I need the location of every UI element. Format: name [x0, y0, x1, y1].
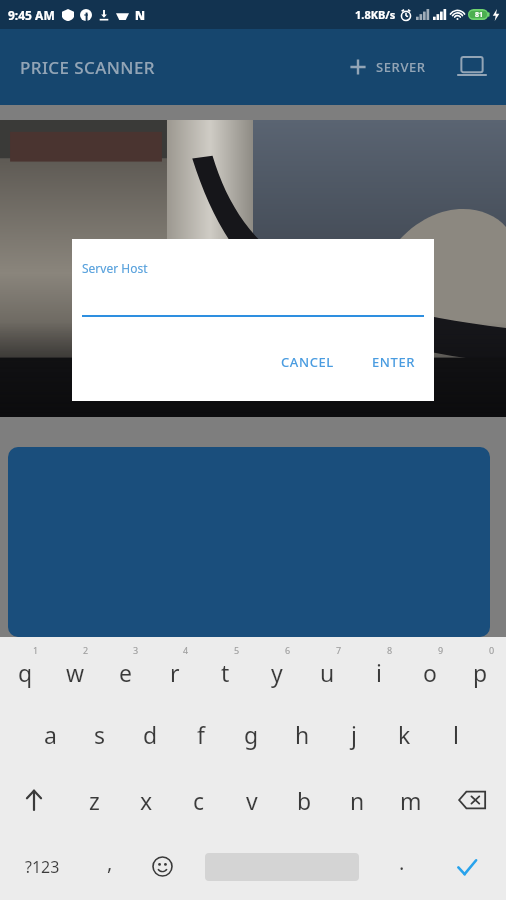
button[interactable]: Backspace: [437, 767, 506, 833]
staticText: p: [473, 657, 488, 688]
button[interactable]: n: [331, 767, 384, 833]
button[interactable]: b: [278, 767, 331, 833]
button[interactable]: CANCEL: [269, 345, 346, 379]
staticText: v: [246, 785, 258, 816]
staticText: h: [295, 719, 310, 750]
staticText: 7: [336, 644, 342, 656]
staticText: .: [399, 849, 405, 876]
button[interactable]: [8, 447, 490, 637]
staticText: b: [297, 785, 312, 816]
staticText: 81: [475, 10, 484, 20]
button[interactable]: k: [379, 701, 430, 767]
staticText: f: [197, 719, 205, 750]
staticText: Server Host: [82, 260, 148, 276]
staticText: ENTER: [372, 353, 416, 371]
staticText: 1: [33, 644, 39, 656]
button[interactable]: ENTER: [360, 345, 428, 379]
staticText: s: [94, 719, 106, 750]
staticText: m: [400, 785, 422, 816]
staticText: w: [66, 657, 85, 688]
staticText: 0: [489, 644, 495, 656]
staticText: u: [320, 657, 335, 688]
staticText: e: [119, 657, 132, 688]
button[interactable]: Connect to computer: [450, 45, 494, 89]
staticText: 4: [183, 644, 189, 656]
button[interactable]: v: [225, 767, 278, 833]
button[interactable]: SERVER: [342, 49, 432, 85]
staticText: ,: [107, 849, 113, 876]
staticText: 3: [133, 644, 139, 656]
staticText: c: [193, 785, 205, 816]
staticText: 8: [387, 644, 393, 656]
button[interactable]: f: [175, 701, 226, 767]
staticText: k: [398, 719, 411, 750]
button[interactable]: .: [376, 833, 428, 900]
button[interactable]: g: [226, 701, 277, 767]
staticText: i: [376, 657, 382, 688]
staticText: 9:45 AM: [8, 7, 55, 23]
button[interactable]: a: [25, 701, 75, 767]
staticText: SERVER: [376, 58, 426, 76]
button[interactable]: j: [328, 701, 379, 767]
staticText: d: [143, 719, 158, 750]
staticText: g: [244, 719, 259, 750]
button[interactable]: m: [384, 767, 437, 833]
button[interactable]: 4: [150, 637, 200, 701]
staticText: CANCEL: [281, 353, 334, 371]
button[interactable]: 1: [0, 637, 50, 701]
button[interactable]: ,: [84, 833, 136, 900]
button[interactable]: Space: [188, 833, 376, 900]
button[interactable]: 7: [302, 637, 353, 701]
staticText: 2: [83, 644, 89, 656]
staticText: o: [423, 657, 437, 688]
button[interactable]: Shift: [0, 767, 68, 833]
staticText: j: [351, 719, 357, 750]
staticText: r: [170, 657, 180, 688]
button[interactable]: l: [430, 701, 481, 767]
staticText: l: [453, 719, 459, 750]
staticText: y: [271, 657, 283, 688]
staticText: 9: [438, 644, 444, 656]
staticText: n: [350, 785, 365, 816]
button[interactable]: c: [172, 767, 225, 833]
button[interactable]: 6: [251, 637, 302, 701]
button[interactable]: 0: [455, 637, 506, 701]
staticText: 1.8KB/s: [355, 7, 396, 22]
button[interactable]: ?123: [0, 833, 84, 900]
staticText: 6: [285, 644, 291, 656]
button[interactable]: 9: [404, 637, 455, 701]
button[interactable]: h: [277, 701, 328, 767]
button[interactable]: d: [125, 701, 175, 767]
button[interactable]: Enter: [428, 833, 506, 900]
staticText: 5: [234, 644, 240, 656]
button[interactable]: 3: [100, 637, 150, 701]
staticText: q: [18, 657, 33, 688]
staticText: PRICE SCANNER: [20, 56, 155, 79]
button[interactable]: 5: [200, 637, 251, 701]
button[interactable]: 2: [50, 637, 100, 701]
button[interactable]: x: [120, 767, 172, 833]
button[interactable]: s: [75, 701, 125, 767]
staticText: N: [135, 7, 146, 23]
button[interactable]: z: [68, 767, 120, 833]
staticText: t: [221, 657, 230, 688]
staticText: ?123: [25, 856, 60, 878]
button[interactable]: 8: [353, 637, 404, 701]
staticText: a: [44, 719, 57, 750]
button[interactable]: Emoji: [136, 833, 188, 900]
staticText: x: [140, 785, 153, 816]
staticText: z: [89, 785, 100, 816]
